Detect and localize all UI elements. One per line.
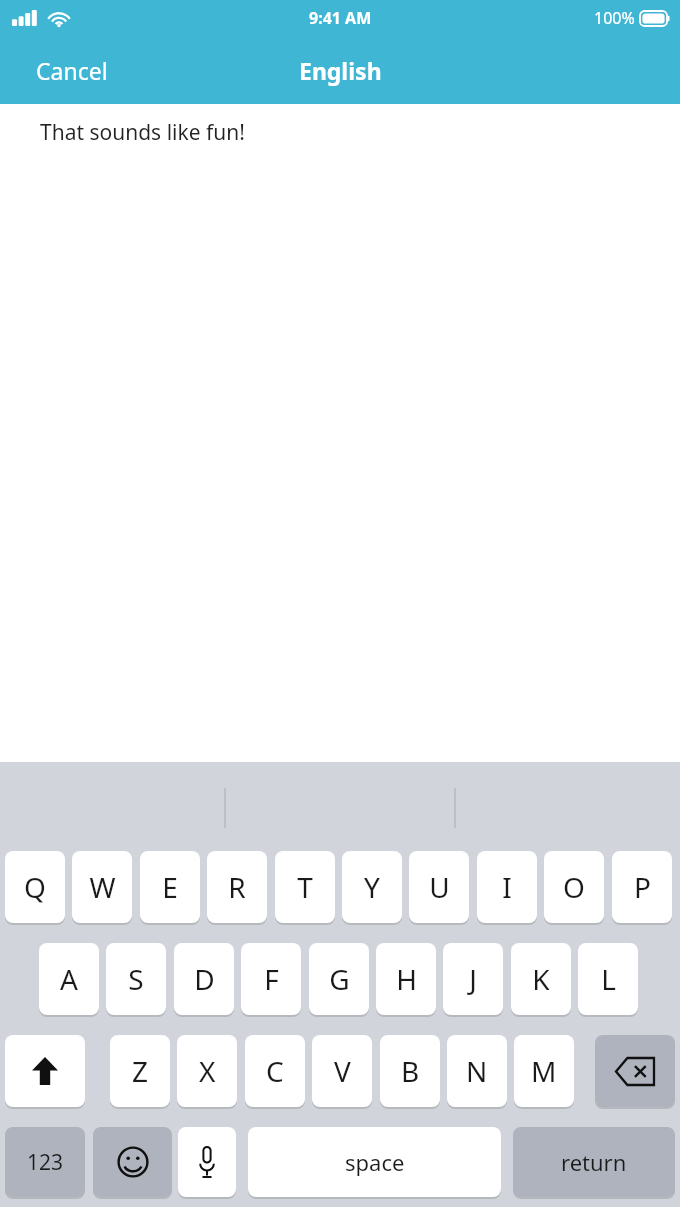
staticText: U: [429, 868, 450, 906]
button[interactable]: [595, 1035, 675, 1107]
button[interactable]: B: [380, 1035, 440, 1107]
staticText: 100%: [594, 7, 635, 29]
staticText: English: [299, 55, 382, 86]
button[interactable]: 123: [5, 1127, 85, 1197]
button[interactable]: Q: [5, 851, 65, 923]
button[interactable]: [93, 1127, 172, 1197]
staticText: Y: [364, 868, 380, 906]
staticText: P: [634, 868, 651, 906]
staticText: 9:41 AM: [309, 7, 372, 29]
button[interactable]: F: [241, 943, 301, 1015]
button[interactable]: [178, 1127, 236, 1197]
staticText: I: [502, 868, 512, 906]
button[interactable]: M: [514, 1035, 574, 1107]
button[interactable]: P: [612, 851, 672, 923]
staticText: E: [162, 868, 178, 906]
staticText: Cancel: [36, 55, 108, 86]
button[interactable]: N: [447, 1035, 507, 1107]
button[interactable]: U: [409, 851, 469, 923]
staticText: G: [329, 960, 350, 998]
staticText: That sounds like fun!: [40, 118, 245, 147]
staticText: 123: [27, 1148, 64, 1177]
staticText: D: [194, 960, 215, 998]
staticText: M: [531, 1052, 557, 1090]
staticText: space: [345, 1147, 405, 1177]
other: Emoji: [93, 1127, 172, 1197]
button[interactable]: C: [245, 1035, 305, 1107]
staticText: K: [532, 960, 550, 998]
staticText: Z: [132, 1052, 149, 1090]
button[interactable]: T: [275, 851, 335, 923]
staticText: V: [334, 1052, 351, 1090]
button[interactable]: W: [72, 851, 132, 923]
button[interactable]: S: [106, 943, 166, 1015]
staticText: return: [561, 1147, 627, 1177]
staticText: C: [266, 1052, 284, 1090]
other: Dictation: [178, 1127, 236, 1197]
button[interactable]: K: [511, 943, 571, 1015]
button[interactable]: return: [513, 1127, 675, 1197]
staticText: R: [228, 868, 246, 906]
button[interactable]: X: [177, 1035, 237, 1107]
staticText: B: [401, 1052, 420, 1090]
staticText: S: [128, 960, 144, 998]
button[interactable]: G: [309, 943, 369, 1015]
staticText: A: [60, 960, 78, 998]
button[interactable]: R: [207, 851, 267, 923]
staticText: H: [396, 960, 417, 998]
staticText: N: [466, 1052, 488, 1090]
staticText: L: [601, 960, 616, 998]
button[interactable]: [5, 1035, 85, 1107]
button[interactable]: Z: [110, 1035, 170, 1107]
staticText: X: [199, 1052, 216, 1090]
staticText: Q: [24, 868, 46, 906]
button[interactable]: L: [578, 943, 638, 1015]
staticText: J: [469, 960, 477, 998]
staticText: O: [563, 868, 585, 906]
button[interactable]: I: [477, 851, 537, 923]
other: Shift: [5, 1035, 85, 1107]
button[interactable]: A: [39, 943, 99, 1015]
button[interactable]: E: [140, 851, 200, 923]
button[interactable]: J: [443, 943, 503, 1015]
staticText: T: [297, 868, 313, 906]
button[interactable]: space: [248, 1127, 501, 1197]
other: Backspace: [595, 1035, 675, 1107]
staticText: F: [264, 960, 279, 998]
staticText: W: [89, 868, 116, 906]
button[interactable]: O: [544, 851, 604, 923]
button[interactable]: H: [376, 943, 436, 1015]
button[interactable]: D: [174, 943, 234, 1015]
button[interactable]: Y: [342, 851, 402, 923]
button[interactable]: Cancel: [22, 47, 122, 94]
button[interactable]: V: [312, 1035, 372, 1107]
